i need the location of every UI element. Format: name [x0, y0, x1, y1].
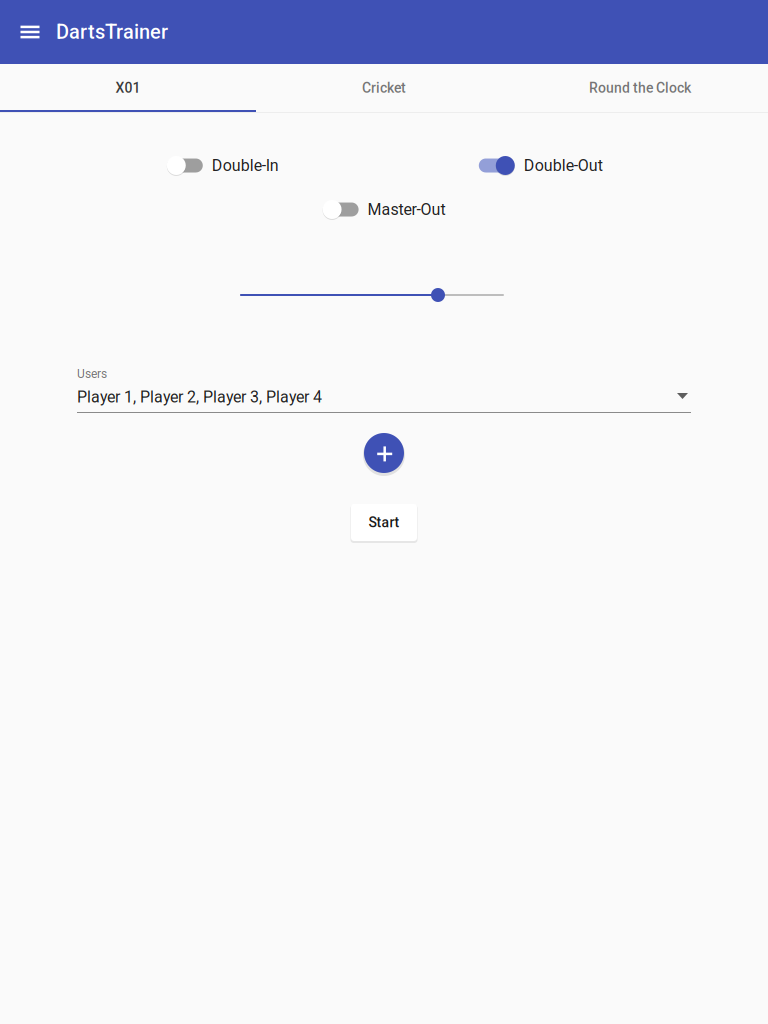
staticText: DartsTrainer: [56, 20, 168, 44]
button[interactable]: Menu: [8, 10, 52, 54]
staticText: X01: [115, 80, 140, 96]
button[interactable]: X01: [0, 64, 256, 112]
staticText: Player 1, Player 2, Player 3, Player 4: [77, 388, 322, 406]
staticText: Round the Clock: [589, 80, 691, 96]
button[interactable]: Round the Clock: [512, 64, 768, 112]
button[interactable]: Start: [348, 500, 420, 544]
staticText: Start: [368, 514, 399, 531]
staticText: Cricket: [362, 80, 406, 96]
staticText: Master-Out: [368, 200, 446, 219]
button[interactable]: Double-Out: [476, 150, 603, 181]
staticText: Users: [77, 367, 107, 381]
button[interactable]: Add player: [356, 425, 412, 481]
button[interactable]: Cricket: [256, 64, 512, 112]
staticText: Double-Out: [524, 156, 603, 175]
staticText: Double-In: [212, 156, 279, 175]
button[interactable]: Double-In: [164, 150, 279, 181]
button[interactable]: Users: [77, 363, 692, 421]
button[interactable]: Master-Out: [320, 194, 446, 225]
